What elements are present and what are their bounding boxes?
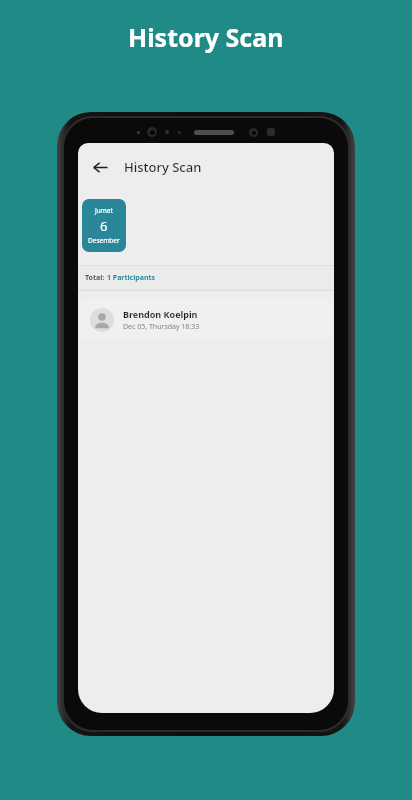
staticText: Total: [85, 273, 107, 283]
staticText: Jumat [95, 206, 113, 215]
staticText: 1 Participants [107, 273, 156, 283]
button[interactable]: Jumat [82, 199, 126, 252]
staticText: History Scan [124, 158, 202, 176]
staticText: Desember [88, 236, 120, 245]
button[interactable]: Brendon Koelpin [81, 298, 331, 341]
button[interactable]: Back [81, 148, 119, 186]
staticText: 6 [100, 217, 108, 235]
staticText: Brendon Koelpin [123, 308, 198, 320]
staticText: Dec 05, Thursday 18:33 [123, 322, 200, 332]
staticText: History Scan [128, 20, 284, 54]
